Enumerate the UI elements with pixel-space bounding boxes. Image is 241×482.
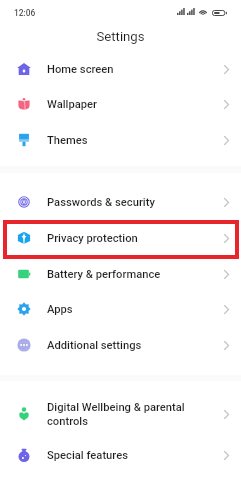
- staticText: Additional settings: [47, 339, 142, 352]
- button[interactable]: Themes: [0, 122, 241, 158]
- button[interactable]: Additional settings: [0, 327, 241, 363]
- button[interactable]: Battery & performance: [0, 256, 241, 292]
- staticText: Wallpaper: [47, 98, 98, 111]
- staticText: Passwords & security: [47, 196, 155, 209]
- button[interactable]: Special features: [0, 437, 241, 473]
- staticText: Privacy protection: [47, 232, 138, 245]
- staticText: Settings: [96, 29, 145, 44]
- button[interactable]: Home screen: [0, 51, 241, 87]
- staticText: 12:06: [14, 8, 36, 18]
- staticText: Apps: [47, 303, 73, 316]
- button[interactable]: Wallpaper: [0, 86, 241, 122]
- button[interactable]: Apps: [0, 291, 241, 327]
- staticText: Themes: [47, 134, 88, 147]
- button[interactable]: Digital Wellbeing & parental controls: [0, 396, 241, 432]
- staticText: Special features: [47, 449, 128, 462]
- staticText: Home screen: [47, 63, 114, 76]
- button[interactable]: Privacy protection: [0, 220, 241, 256]
- staticText: Digital Wellbeing & parental controls: [47, 401, 185, 428]
- staticText: Battery & performance: [47, 268, 161, 281]
- button[interactable]: Passwords & security: [0, 184, 241, 220]
